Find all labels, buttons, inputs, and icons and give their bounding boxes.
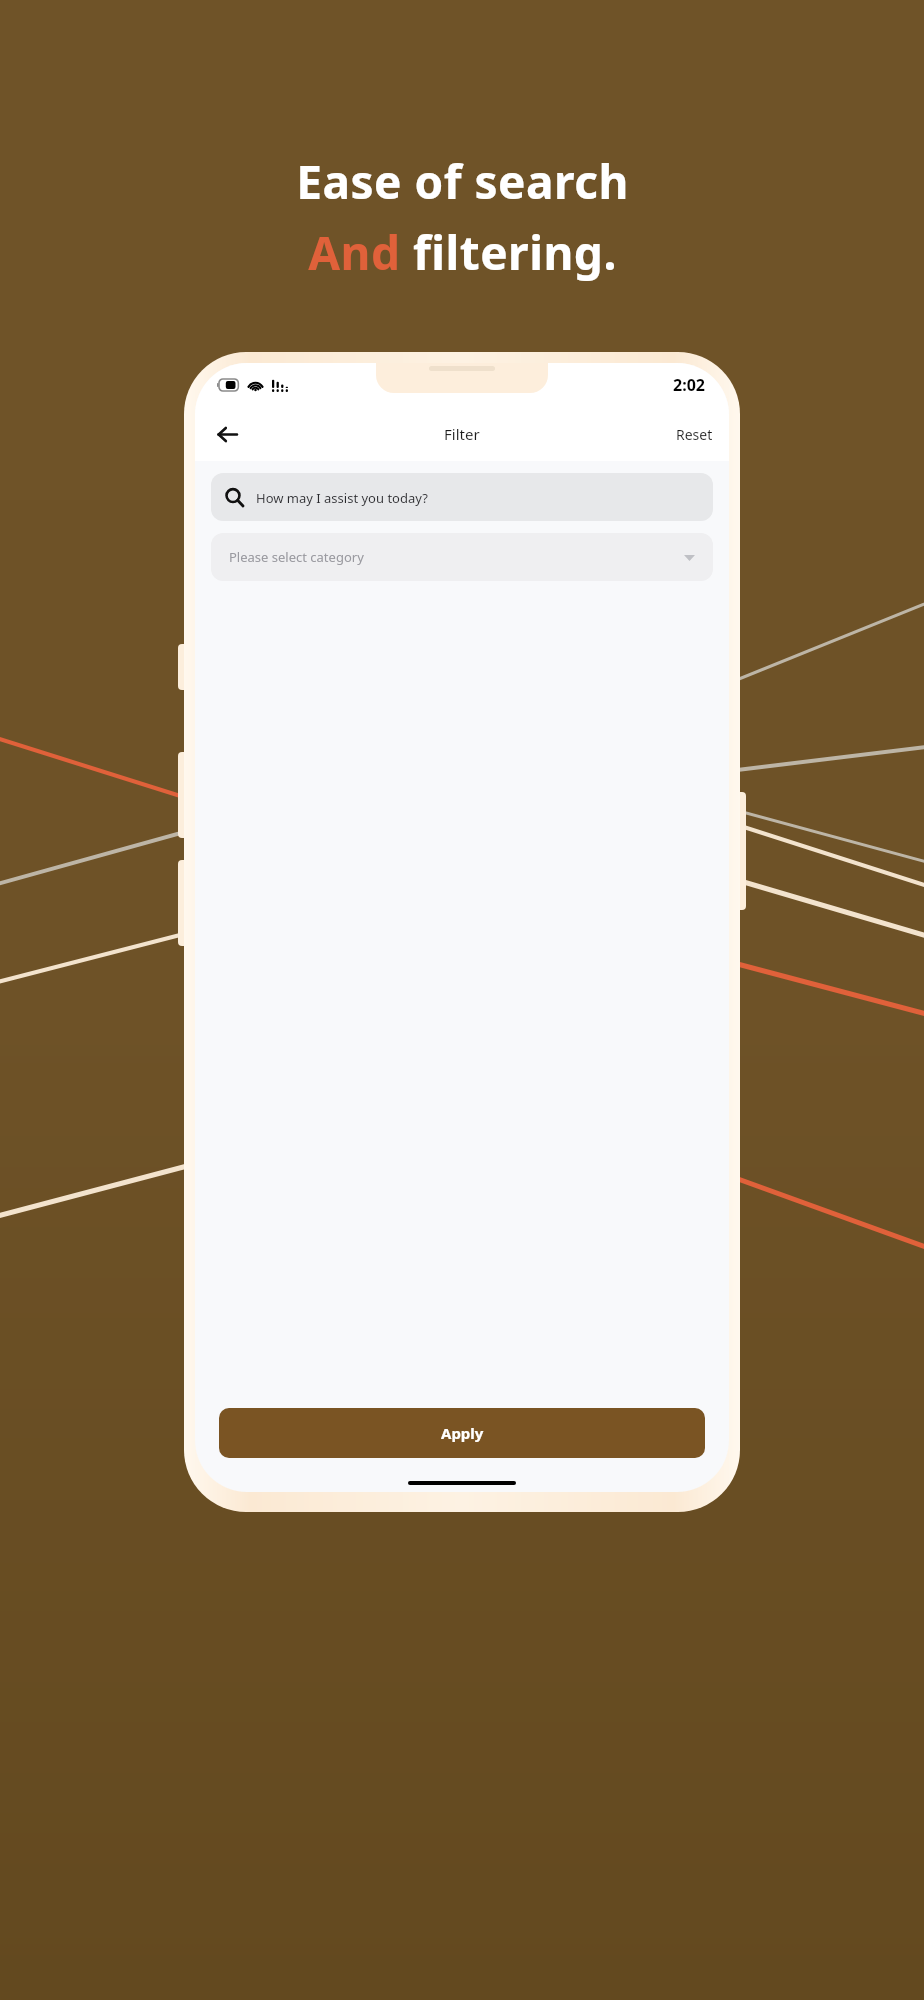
button[interactable]: Apply — [219, 1408, 705, 1458]
button[interactable]: Back — [205, 412, 249, 456]
staticText: Ease of search — [296, 150, 629, 213]
staticText: And filtering. — [308, 221, 617, 284]
staticText: 2:02 — [673, 374, 705, 396]
button[interactable]: Reset — [660, 415, 729, 454]
staticText: How may I assist you today? — [256, 489, 428, 507]
button[interactable]: How may I assist you today? — [211, 473, 713, 521]
button[interactable]: Please select category — [211, 533, 713, 581]
staticText: Reset — [676, 425, 713, 444]
staticText: Filter — [444, 424, 480, 444]
staticText: Please select category — [229, 548, 364, 566]
staticText: Apply — [441, 1423, 484, 1443]
